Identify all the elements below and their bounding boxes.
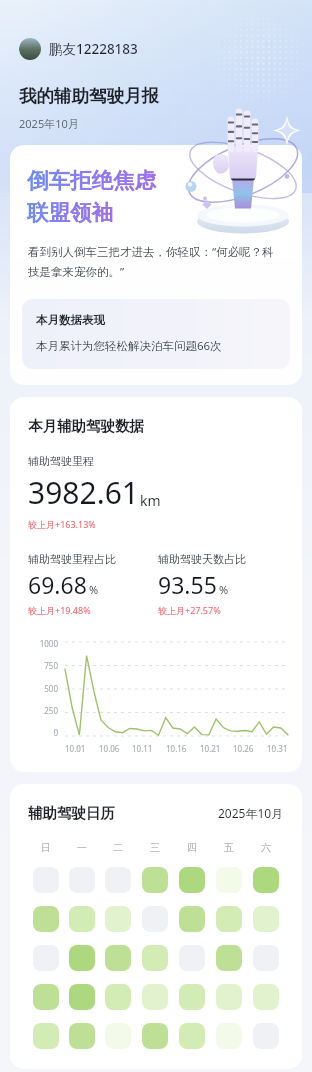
button[interactable] [253, 867, 279, 893]
button[interactable] [179, 984, 205, 1010]
button[interactable] [33, 1023, 59, 1049]
staticText: 三 [150, 841, 160, 854]
staticText: 本月辅助驾驶数据 [28, 417, 144, 435]
button[interactable] [105, 984, 131, 1010]
staticText: 四 [187, 841, 197, 854]
staticText: 1000 [39, 638, 58, 649]
button[interactable] [105, 1023, 131, 1049]
staticText: 10.16 [166, 743, 187, 754]
staticText: 倒车拒绝焦虑 [27, 167, 156, 194]
staticText: 较上月+163.13% [28, 518, 96, 530]
button[interactable] [142, 1023, 168, 1049]
button[interactable] [142, 867, 168, 893]
staticText: 10.26 [233, 743, 254, 754]
staticText: 750 [44, 660, 58, 671]
button[interactable] [69, 984, 95, 1010]
button[interactable] [69, 867, 95, 893]
staticText: 3982.61 [28, 472, 139, 513]
staticText: 五 [224, 841, 234, 854]
staticText: 0 [53, 727, 58, 738]
staticText: 2025年10月 [218, 805, 284, 821]
staticText: 辅助驾驶里程 [28, 454, 94, 468]
button[interactable] [142, 906, 168, 932]
staticText: 较上月+27.57% [158, 604, 221, 616]
staticText: 500 [44, 683, 58, 694]
button[interactable]: 本月数据表现 [22, 299, 290, 369]
staticText: 联盟领袖 [27, 199, 113, 226]
button[interactable] [105, 867, 131, 893]
button[interactable] [253, 984, 279, 1010]
button[interactable] [253, 945, 279, 971]
button[interactable] [142, 945, 168, 971]
button[interactable] [216, 1023, 242, 1049]
button[interactable] [179, 906, 205, 932]
button[interactable]: 辅助驾驶日历 [10, 784, 302, 1069]
staticText: 10.31 [267, 743, 288, 754]
staticText: 本月数据表现 [36, 313, 105, 327]
staticText: 辅助驾驶日历 [28, 804, 115, 822]
button[interactable] [33, 906, 59, 932]
button[interactable] [69, 906, 95, 932]
other: Assisted driving illustration [178, 108, 308, 228]
button[interactable] [179, 867, 205, 893]
button[interactable] [216, 984, 242, 1010]
button[interactable]: 鹏友12228183 [19, 36, 146, 62]
button[interactable]: 本月辅助驾驶数据 [10, 397, 302, 772]
staticText: 10.21 [200, 743, 221, 754]
button[interactable] [69, 1023, 95, 1049]
button[interactable] [33, 945, 59, 971]
staticText: 我的辅助驾驶月报 [19, 85, 159, 107]
button[interactable] [142, 984, 168, 1010]
button[interactable] [105, 906, 131, 932]
button[interactable] [33, 867, 59, 893]
staticText: 250 [44, 705, 58, 716]
staticText: 看到别人倒车三把才进去，你轻叹：“何必呢？科技是拿来宠你的。” [28, 244, 285, 279]
staticText: 一 [77, 841, 87, 854]
button[interactable] [253, 906, 279, 932]
button[interactable] [216, 906, 242, 932]
button[interactable] [179, 1023, 205, 1049]
staticText: 六 [261, 841, 271, 854]
staticText: 鹏友12228183 [49, 40, 138, 58]
staticText: 10.01 [65, 743, 86, 754]
staticText: 二 [113, 841, 123, 854]
button[interactable] [253, 1023, 279, 1049]
button[interactable]: 倒车拒绝焦虑 [10, 145, 302, 385]
staticText: % [219, 582, 229, 597]
button[interactable] [216, 867, 242, 893]
button[interactable] [33, 984, 59, 1010]
staticText: km [140, 491, 161, 510]
button[interactable] [69, 945, 95, 971]
staticText: 日 [41, 841, 51, 854]
staticText: % [89, 582, 99, 597]
staticText: 10.06 [99, 743, 120, 754]
button[interactable] [179, 945, 205, 971]
staticText: 2025年10月 [19, 116, 79, 131]
button[interactable] [105, 945, 131, 971]
staticText: 辅助驾驶天数占比 [158, 552, 246, 566]
staticText: 10.11 [132, 743, 153, 754]
staticText: 69.68 [28, 569, 87, 600]
staticText: 辅助驾驶里程占比 [28, 552, 116, 566]
staticText: 本月累计为您轻松解决泊车问题66次 [36, 338, 222, 354]
staticText: 93.55 [158, 569, 217, 600]
button[interactable] [216, 945, 242, 971]
staticText: 较上月+19.48% [28, 604, 91, 616]
